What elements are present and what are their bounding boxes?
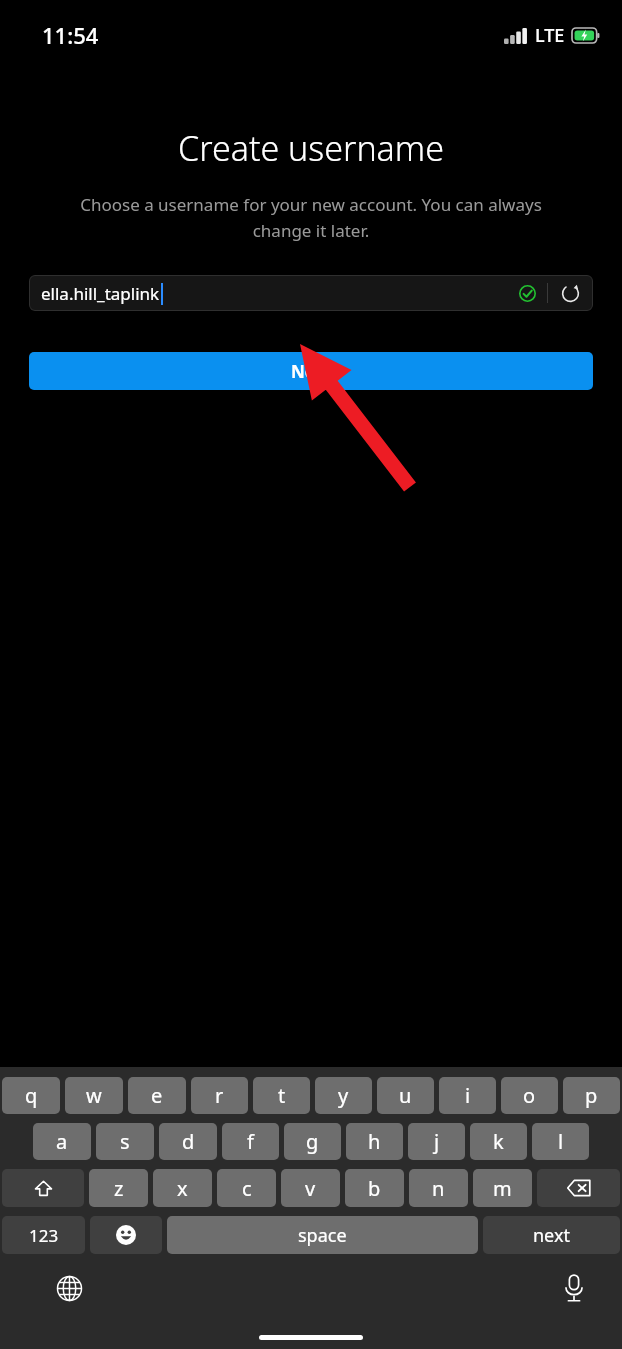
button[interactable]: 123 — [2, 1216, 85, 1254]
button[interactable]: ella.hill_taplink — [29, 275, 593, 311]
staticText: 123 — [29, 1224, 59, 1247]
staticText: z — [114, 1175, 124, 1202]
button[interactable]: z — [89, 1169, 148, 1207]
staticText: b — [368, 1175, 381, 1202]
button[interactable]: a — [33, 1123, 91, 1160]
staticText: LTE — [535, 23, 565, 48]
button[interactable]: Backspace — [537, 1169, 620, 1207]
staticText: Create username — [0, 125, 622, 171]
button[interactable]: r — [191, 1077, 248, 1114]
staticText: a — [56, 1128, 68, 1155]
button[interactable]: space — [167, 1216, 478, 1254]
button[interactable]: q — [2, 1077, 60, 1114]
staticText: q — [25, 1082, 38, 1109]
staticText: g — [306, 1128, 319, 1155]
staticText: 11:54 — [42, 20, 99, 50]
button[interactable]: l — [532, 1123, 589, 1160]
button[interactable]: g — [284, 1123, 341, 1160]
button[interactable]: c — [217, 1169, 276, 1207]
staticText: u — [399, 1082, 412, 1109]
staticText: o — [523, 1082, 536, 1109]
staticText: f — [247, 1128, 254, 1155]
button[interactable]: d — [159, 1123, 217, 1160]
staticText: next — [533, 1223, 570, 1248]
staticText: space — [298, 1223, 347, 1248]
staticText: w — [86, 1082, 102, 1109]
button[interactable]: b — [345, 1169, 404, 1207]
staticText: s — [120, 1128, 130, 1155]
button[interactable]: x — [153, 1169, 212, 1207]
button[interactable]: next — [483, 1216, 620, 1254]
button[interactable]: i — [439, 1077, 496, 1114]
button[interactable]: t — [253, 1077, 310, 1114]
staticText: Choose a username for your new account. … — [57, 193, 565, 242]
button[interactable]: n — [409, 1169, 468, 1207]
button[interactable]: o — [501, 1077, 558, 1114]
staticText: e — [151, 1082, 163, 1109]
staticText: m — [493, 1175, 512, 1202]
button[interactable]: s — [96, 1123, 154, 1160]
button[interactable]: u — [377, 1077, 434, 1114]
staticText: t — [278, 1082, 286, 1109]
button[interactable]: k — [470, 1123, 527, 1160]
staticText: d — [182, 1128, 195, 1155]
staticText: l — [558, 1128, 564, 1155]
staticText: ella.hill_taplink — [41, 282, 160, 305]
staticText: y — [338, 1082, 349, 1109]
button[interactable]: e — [128, 1077, 186, 1114]
button[interactable]: Shift — [2, 1169, 84, 1207]
staticText: x — [177, 1175, 188, 1202]
button[interactable]: Next — [29, 352, 593, 390]
staticText: Next — [291, 360, 332, 383]
button[interactable]: w — [65, 1077, 123, 1114]
staticText: n — [432, 1175, 445, 1202]
button[interactable]: f — [222, 1123, 279, 1160]
staticText: v — [305, 1175, 316, 1202]
button[interactable]: y — [315, 1077, 372, 1114]
button[interactable]: Change keyboard language — [48, 1267, 90, 1309]
staticText: j — [434, 1128, 440, 1155]
staticText: i — [465, 1082, 471, 1109]
staticText: k — [493, 1128, 504, 1155]
button[interactable]: m — [473, 1169, 532, 1207]
staticText: r — [215, 1082, 224, 1109]
staticText: p — [585, 1082, 598, 1109]
button[interactable]: Emoji — [90, 1216, 162, 1254]
button[interactable]: p — [563, 1077, 620, 1114]
button[interactable]: Voice input — [553, 1267, 595, 1309]
button[interactable]: v — [281, 1169, 340, 1207]
button[interactable]: h — [346, 1123, 403, 1160]
button[interactable]: j — [408, 1123, 465, 1160]
staticText: h — [368, 1128, 381, 1155]
staticText: c — [242, 1175, 252, 1202]
button[interactable]: Generate new username — [559, 282, 581, 304]
